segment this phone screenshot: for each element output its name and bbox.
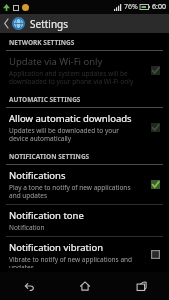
- button[interactable]: Home: [57, 272, 113, 300]
- button[interactable]: Back: [0, 272, 57, 300]
- button[interactable]: Allow automatic downloads: [0, 108, 169, 147]
- staticText: NOTIFICATION SETTINGS: [9, 152, 90, 161]
- button[interactable]: Toggle setting: [149, 178, 162, 191]
- staticText: AUTOMATIC SETTINGS: [9, 95, 81, 104]
- staticText: Application and system updates will be d…: [9, 69, 134, 86]
- button[interactable]: Back to Settings: [0, 14, 169, 33]
- staticText: Play a tone to notify of new application…: [9, 183, 131, 200]
- staticText: Allow automatic downloads: [9, 112, 132, 125]
- button[interactable]: Update via Wi-Fi only: [0, 51, 169, 90]
- staticText: Notifications: [9, 169, 66, 182]
- staticText: 76%: [124, 2, 138, 12]
- staticText: Notification vibration: [9, 241, 104, 254]
- staticText: Settings: [30, 17, 69, 31]
- staticText: Notification tone: [9, 209, 84, 222]
- button[interactable]: Notification tone: [0, 205, 169, 236]
- staticText: 6:00: [152, 2, 166, 12]
- staticText: Notification: [9, 223, 45, 232]
- staticText: Vibrate to notify of new applications an…: [9, 255, 133, 268]
- staticText: NETWORK SETTINGS: [9, 38, 75, 47]
- staticText: Update via Wi-Fi only: [9, 55, 103, 68]
- button[interactable]: Toggle setting: [149, 121, 162, 134]
- button[interactable]: Toggle setting: [149, 248, 162, 261]
- button[interactable]: Recent apps: [113, 272, 169, 300]
- button[interactable]: Notifications: [0, 165, 169, 204]
- button[interactable]: Toggle setting: [149, 64, 162, 77]
- staticText: Updates will be downloaded to your devic…: [9, 126, 119, 143]
- button[interactable]: Notification vibration: [0, 237, 169, 272]
